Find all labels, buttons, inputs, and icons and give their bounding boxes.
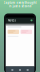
staticText: Capture every thought bbox=[3, 1, 36, 4]
button[interactable]: Tab bbox=[19, 69, 21, 71]
button[interactable]: Tab bbox=[27, 69, 29, 71]
staticText: Notes bbox=[7, 19, 15, 22]
staticText: in just a second bbox=[8, 4, 31, 8]
button[interactable]: Tab bbox=[11, 69, 13, 71]
